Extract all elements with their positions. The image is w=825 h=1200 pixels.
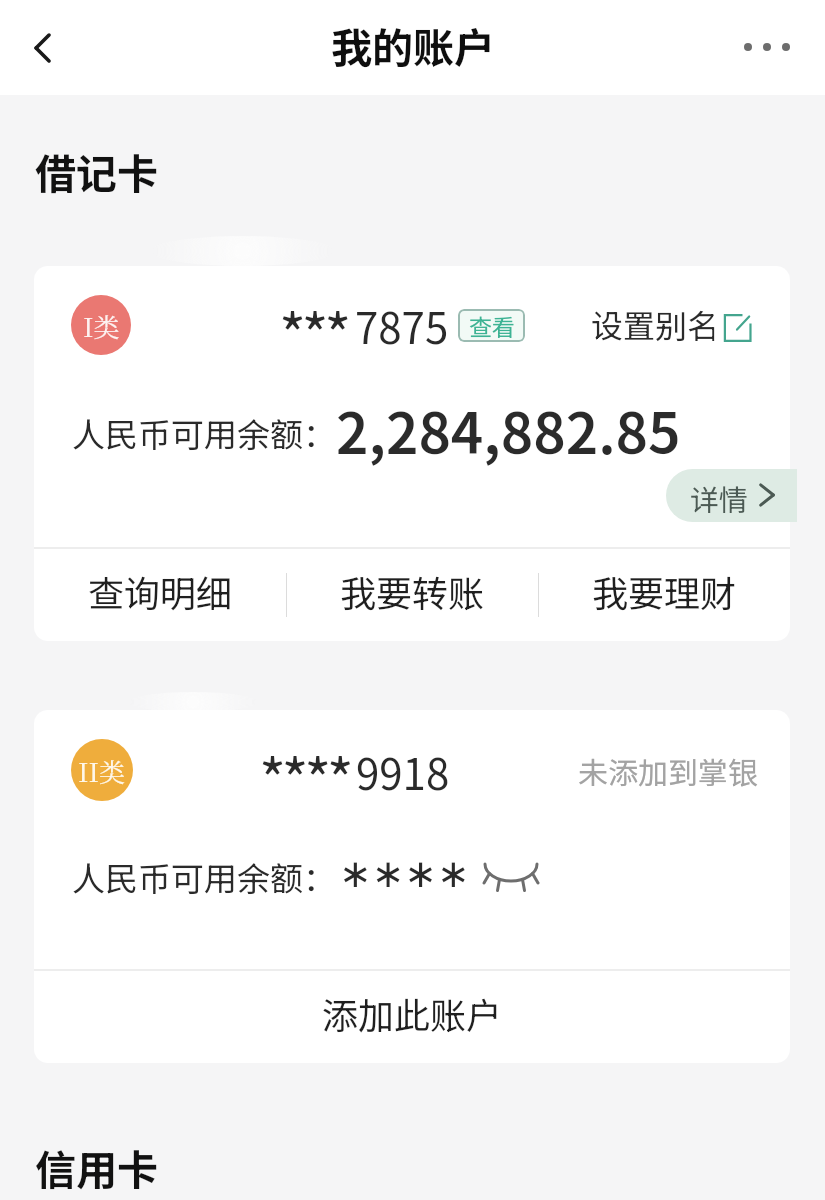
staticText: 借记卡 — [35, 141, 158, 200]
button[interactable]: 查询明细 — [34, 547, 286, 641]
staticText: 我要理财 — [592, 565, 737, 617]
staticText: 详情 — [690, 477, 749, 519]
staticText: 设置别名 — [591, 301, 720, 347]
staticText: 查询明细 — [88, 565, 233, 617]
button[interactable]: 设置别名 — [591, 301, 754, 347]
staticText: 我的账户 — [331, 15, 495, 74]
button[interactable]: 我要转账 — [286, 547, 538, 641]
staticText: 未添加到掌银 — [578, 749, 758, 792]
staticText: **** — [259, 735, 350, 819]
staticText: *** — [279, 290, 347, 374]
staticText: 2,284,882.85 — [336, 389, 681, 470]
staticText: 查看 — [469, 309, 515, 342]
button[interactable]: 更多 — [735, 15, 799, 79]
staticText: I类 — [83, 307, 120, 344]
staticText: 添加此账户 — [322, 987, 503, 1039]
staticText: ∗∗∗∗ — [339, 851, 470, 896]
staticText: II类 — [78, 752, 126, 789]
button[interactable]: 添加此账户 — [34, 970, 790, 1063]
staticText: 9918 — [356, 741, 450, 802]
button[interactable]: 详情 — [666, 469, 797, 522]
button[interactable]: 显示余额 — [481, 854, 541, 894]
button[interactable]: 查看 — [458, 309, 525, 342]
staticText: 我要转账 — [340, 565, 485, 617]
button[interactable]: 返回 — [12, 16, 76, 80]
staticText: 人民币可用余额： — [72, 409, 336, 457]
button[interactable]: 我要理财 — [538, 547, 790, 641]
staticText: 7875 — [355, 295, 449, 356]
staticText: 人民币可用余额： — [72, 853, 336, 901]
staticText: 信用卡 — [35, 1137, 158, 1196]
